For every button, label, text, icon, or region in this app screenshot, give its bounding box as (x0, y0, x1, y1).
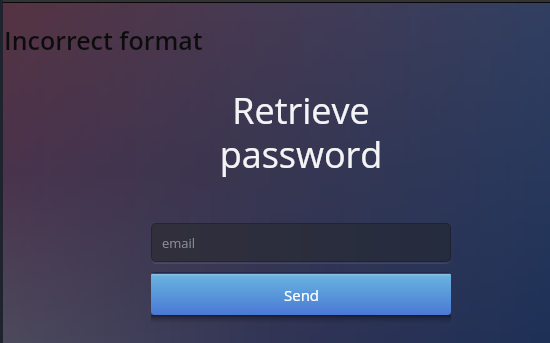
button[interactable]: Send (151, 272, 451, 315)
staticText: email (162, 234, 196, 252)
button[interactable]: email (151, 223, 451, 262)
staticText: Retrieve password (151, 86, 451, 178)
staticText: Incorrect format (4, 23, 203, 57)
staticText: Send (284, 285, 320, 305)
